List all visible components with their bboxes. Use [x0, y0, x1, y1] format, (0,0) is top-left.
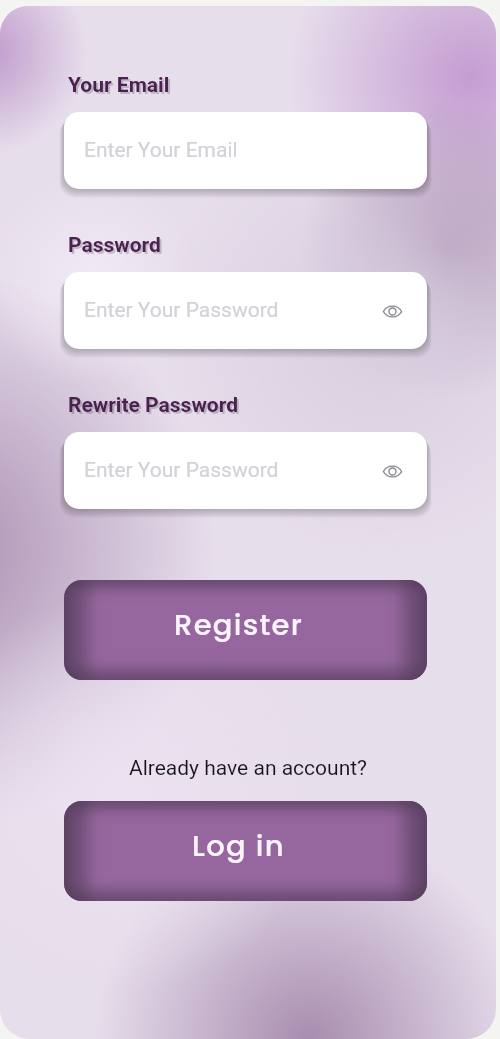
staticText: Rewrite Password: [68, 393, 239, 418]
staticText: Log in: [192, 826, 285, 867]
button[interactable]: Enter Your Password: [64, 432, 427, 509]
staticText: Your Email: [68, 73, 170, 98]
staticText: Enter Your Email: [84, 138, 238, 163]
button[interactable]: Enter Your Password: [64, 272, 427, 349]
staticText: Your Email: [70, 75, 172, 100]
button[interactable]: Toggle password visibility: [379, 458, 405, 484]
staticText: Enter Your Password: [84, 298, 279, 323]
staticText: Enter Your Password: [84, 458, 279, 483]
staticText: Rewrite Password: [70, 395, 241, 420]
button[interactable]: Register: [64, 580, 427, 680]
staticText: Register: [174, 605, 304, 646]
button[interactable]: Enter Your Email: [64, 112, 427, 189]
staticText: Password: [70, 235, 163, 260]
button[interactable]: Log in: [64, 801, 427, 901]
staticText: Already have an account?: [0, 756, 496, 781]
staticText: Password: [68, 233, 161, 258]
button[interactable]: Toggle password visibility: [379, 298, 405, 324]
